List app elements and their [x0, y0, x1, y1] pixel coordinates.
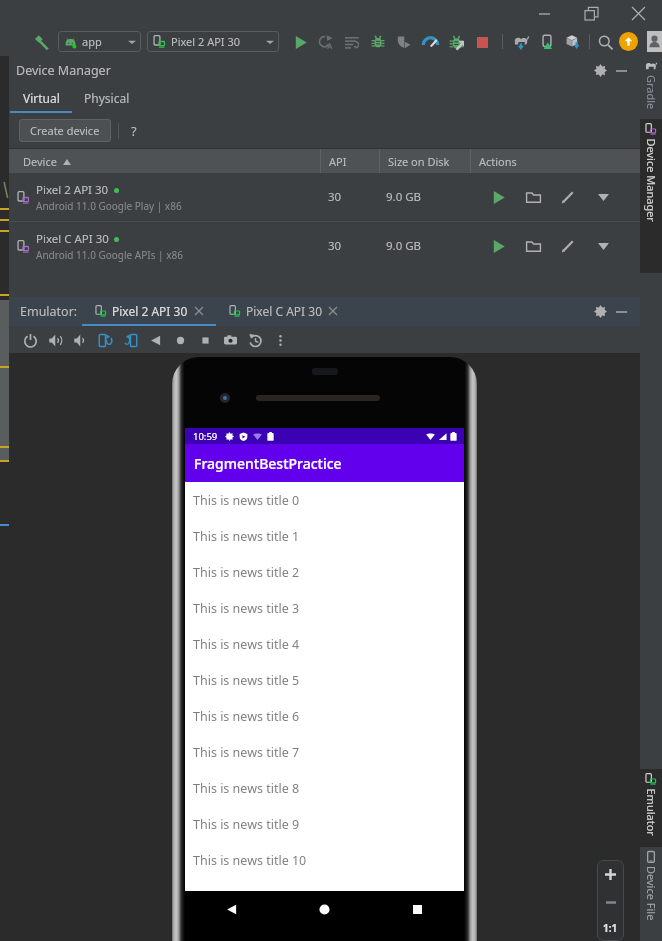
- button[interactable]: This is news title 0: [185, 482, 464, 518]
- button[interactable]: Pixel C API 30: [216, 297, 350, 326]
- button[interactable]: Volume up: [43, 328, 68, 352]
- button[interactable]: Back: [185, 891, 278, 927]
- button[interactable]: Home: [168, 328, 193, 352]
- button[interactable]: Emulator settings: [590, 301, 611, 322]
- staticText: Device Manager: [643, 138, 658, 222]
- staticText: 30: [328, 189, 342, 205]
- button[interactable]: This is news title 5: [185, 662, 464, 698]
- button[interactable]: Actual size: [597, 915, 624, 941]
- staticText: 9.0 GB: [386, 238, 422, 254]
- button[interactable]: Volume down: [68, 328, 93, 352]
- button[interactable]: Extended controls: [243, 328, 268, 352]
- button[interactable]: Attach debugger: [391, 29, 417, 55]
- staticText: This is news title 10: [193, 852, 307, 869]
- staticText: This is news title 4: [193, 636, 300, 653]
- staticText: app: [82, 34, 102, 49]
- button[interactable]: Show on disk: [521, 234, 545, 258]
- button[interactable]: Screenshot: [218, 328, 243, 352]
- button[interactable]: Profile: [417, 29, 443, 55]
- button[interactable]: More: [268, 328, 293, 352]
- button[interactable]: This is news title 3: [185, 590, 464, 626]
- button[interactable]: Pixel C API 30: [9, 222, 640, 270]
- button[interactable]: Stop: [469, 29, 495, 55]
- button[interactable]: Power: [18, 328, 43, 352]
- button[interactable]: Edit: [556, 185, 580, 209]
- button[interactable]: Physical: [72, 85, 142, 113]
- button[interactable]: Minimize: [521, 0, 568, 27]
- button[interactable]: Pixel 2 API 30: [82, 297, 216, 326]
- button[interactable]: Pixel 2 API 30: [147, 31, 279, 52]
- button[interactable]: Show on disk: [521, 185, 545, 209]
- button[interactable]: Back: [143, 328, 168, 352]
- button[interactable]: Logcat: [339, 29, 365, 55]
- button[interactable]: SDK Manager: [508, 29, 534, 55]
- staticText: Gradle: [644, 75, 659, 110]
- staticText: 30: [328, 238, 342, 254]
- button[interactable]: Edit: [556, 234, 580, 258]
- button[interactable]: Zoom out: [597, 889, 624, 915]
- button[interactable]: Launch: [486, 185, 510, 209]
- button[interactable]: Device File: [640, 847, 662, 941]
- staticText: Pixel C API 30: [246, 303, 322, 319]
- button[interactable]: This is news title 2: [185, 554, 464, 590]
- button[interactable]: Help: [125, 122, 143, 140]
- button[interactable]: Launch: [486, 234, 510, 258]
- button[interactable]: Menu: [591, 234, 615, 258]
- staticText: Device: [23, 154, 57, 169]
- staticText: Virtual: [23, 90, 60, 106]
- button[interactable]: Search: [593, 30, 617, 54]
- button[interactable]: Home: [278, 891, 371, 927]
- staticText: This is news title 8: [193, 780, 300, 797]
- staticText: This is news title 9: [193, 816, 300, 833]
- staticText: This is news title 3: [193, 600, 300, 617]
- staticText: Emulator:: [20, 303, 78, 320]
- button[interactable]: Menu: [591, 185, 615, 209]
- button[interactable]: Create device: [19, 119, 111, 142]
- button[interactable]: Close: [615, 0, 662, 27]
- staticText: This is news title 0: [193, 492, 300, 509]
- button[interactable]: Settings: [590, 60, 611, 81]
- staticText: Physical: [84, 90, 130, 106]
- staticText: This is news title 2: [193, 564, 300, 581]
- button[interactable]: Gradle: [640, 56, 662, 119]
- button[interactable]: This is news title 10: [185, 842, 464, 878]
- staticText: Device Manager: [16, 62, 111, 79]
- staticText: FragmentBestPractice: [194, 454, 342, 473]
- button[interactable]: Virtual: [10, 85, 72, 113]
- button[interactable]: Restore: [568, 0, 615, 27]
- staticText: Actions: [479, 154, 517, 169]
- button[interactable]: This is news title 6: [185, 698, 464, 734]
- button[interactable]: Hide panel: [611, 301, 632, 322]
- button[interactable]: Run: [287, 29, 313, 55]
- button[interactable]: Overview: [193, 328, 218, 352]
- button[interactable]: This is news title 8: [185, 770, 464, 806]
- button[interactable]: Zoom in: [597, 860, 624, 889]
- button[interactable]: Rotate right: [118, 328, 143, 352]
- button[interactable]: Apply Changes: [313, 29, 339, 55]
- button[interactable]: This is news title 1: [185, 518, 464, 554]
- button[interactable]: AVD Manager: [534, 29, 560, 55]
- staticText: Pixel 2 API 30: [171, 34, 241, 49]
- button[interactable]: Debug: [365, 29, 391, 55]
- button[interactable]: This is news title 7: [185, 734, 464, 770]
- button[interactable]: Device Manager: [640, 119, 662, 273]
- button[interactable]: Emulator: [640, 769, 662, 847]
- button[interactable]: Pixel 2 API 30: [9, 173, 640, 221]
- staticText: Pixel 2 API 30: [112, 303, 188, 319]
- button[interactable]: Rotate left: [93, 328, 118, 352]
- button[interactable]: Hide: [611, 60, 632, 81]
- staticText: ?: [131, 122, 137, 140]
- button[interactable]: Build: [30, 31, 52, 53]
- staticText: Pixel C API 30: [36, 231, 109, 247]
- button[interactable]: Account: [647, 31, 662, 52]
- button[interactable]: Updates available: [619, 32, 638, 51]
- staticText: This is news title 1: [193, 528, 300, 545]
- button[interactable]: This is news title 4: [185, 626, 464, 662]
- button[interactable]: Sync Project: [560, 29, 586, 55]
- staticText: 10:59: [193, 430, 218, 443]
- staticText: API: [329, 154, 347, 169]
- button[interactable]: This is news title 9: [185, 806, 464, 842]
- button[interactable]: Run with profiler: [443, 29, 469, 55]
- button[interactable]: Recents: [371, 891, 464, 927]
- button[interactable]: app: [58, 31, 141, 52]
